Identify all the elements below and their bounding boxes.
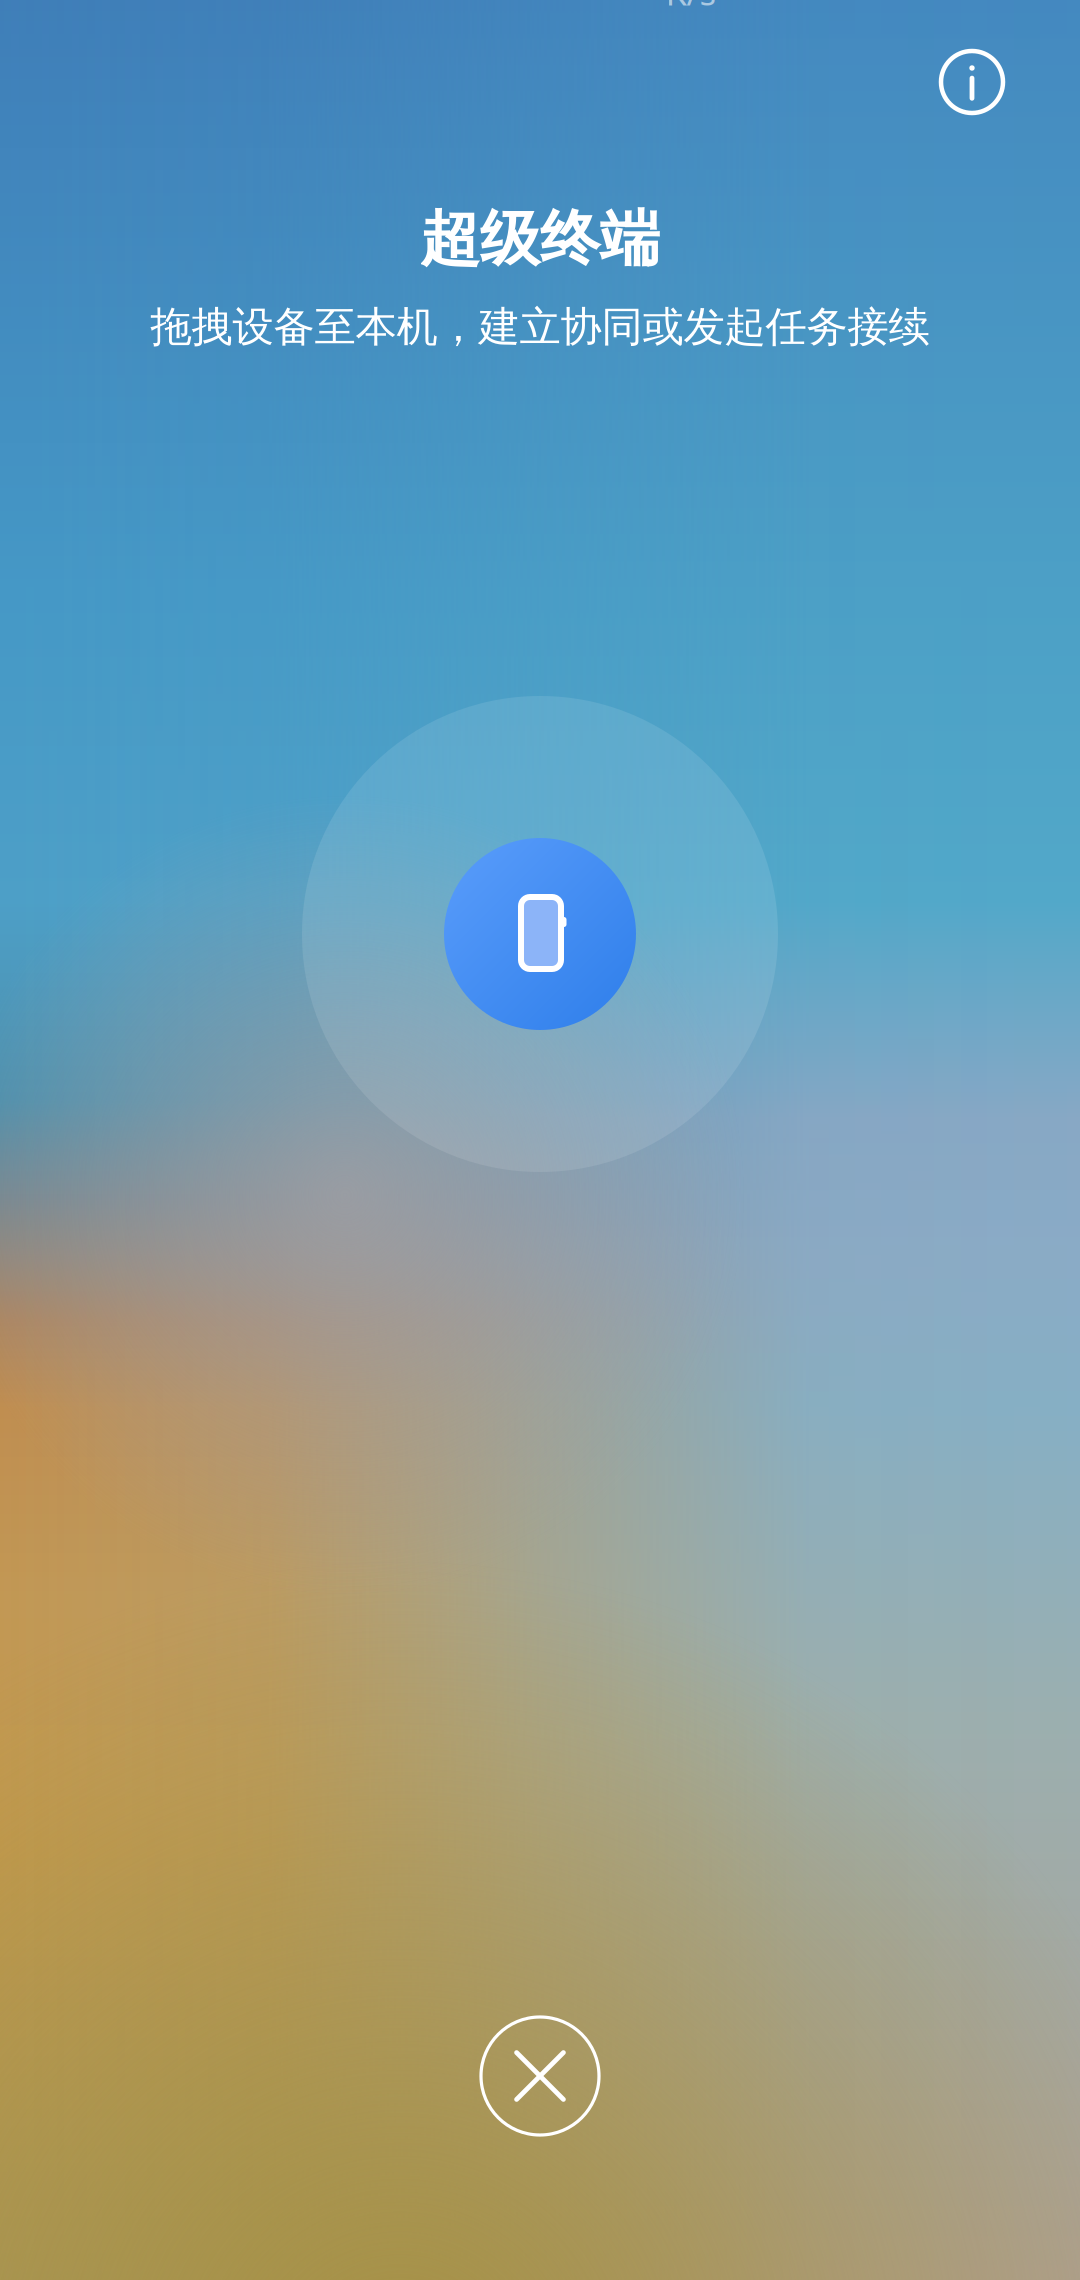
button[interactable]: Close [474,2010,606,2142]
staticText: K/s [665,0,716,15]
button[interactable]: Information [934,44,1010,120]
button[interactable] [444,838,636,1030]
staticText: 拖拽设备至本机，建立协同或发起任务接续 [150,302,929,352]
staticText: 超级终端 [420,202,660,276]
